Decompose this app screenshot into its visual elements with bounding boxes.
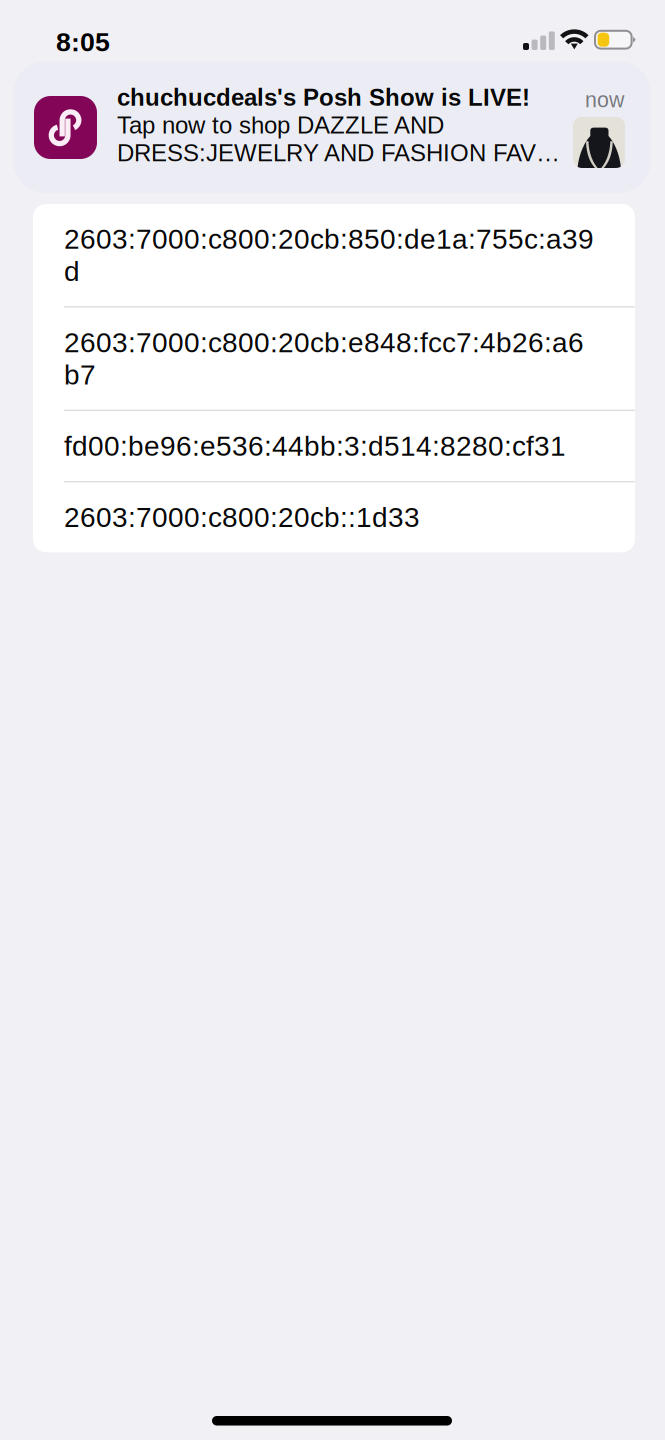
staticText: 2603:7000:c800:20cb:e848:fcc7:4b26:a6 <box>64 327 584 358</box>
staticText: 2603:7000:c800:20cb::1d33 <box>64 502 420 533</box>
button[interactable]: 2603:7000:c800:20cb::1d33 <box>33 482 635 552</box>
button[interactable]: fd00:be96:e536:44bb:3:d514:8280:cf31 <box>33 411 635 482</box>
button[interactable]: 2603:7000:c800:20cb:e848:fcc7:4b26:a6 <box>33 307 635 411</box>
staticText: d <box>64 256 80 287</box>
staticText: chuchucdeals's Posh Show is LIVE! <box>117 84 530 111</box>
button[interactable]: 2603:7000:c800:20cb:850:de1a:755c:a39 <box>33 204 635 307</box>
staticText: b7 <box>64 359 96 390</box>
button[interactable]: chuchucdeals's Posh Show is LIVE! <box>13 61 651 193</box>
staticText: 2603:7000:c800:20cb:850:de1a:755c:a39 <box>64 223 594 255</box>
staticText: Tap now to shop DAZZLE AND <box>117 112 444 139</box>
staticText: DRESS:JEWELRY AND FASHION FAV… <box>117 140 560 166</box>
staticText: 8:05 <box>56 27 110 57</box>
staticText: fd00:be96:e536:44bb:3:d514:8280:cf31 <box>64 430 566 462</box>
staticText: now <box>585 88 624 112</box>
